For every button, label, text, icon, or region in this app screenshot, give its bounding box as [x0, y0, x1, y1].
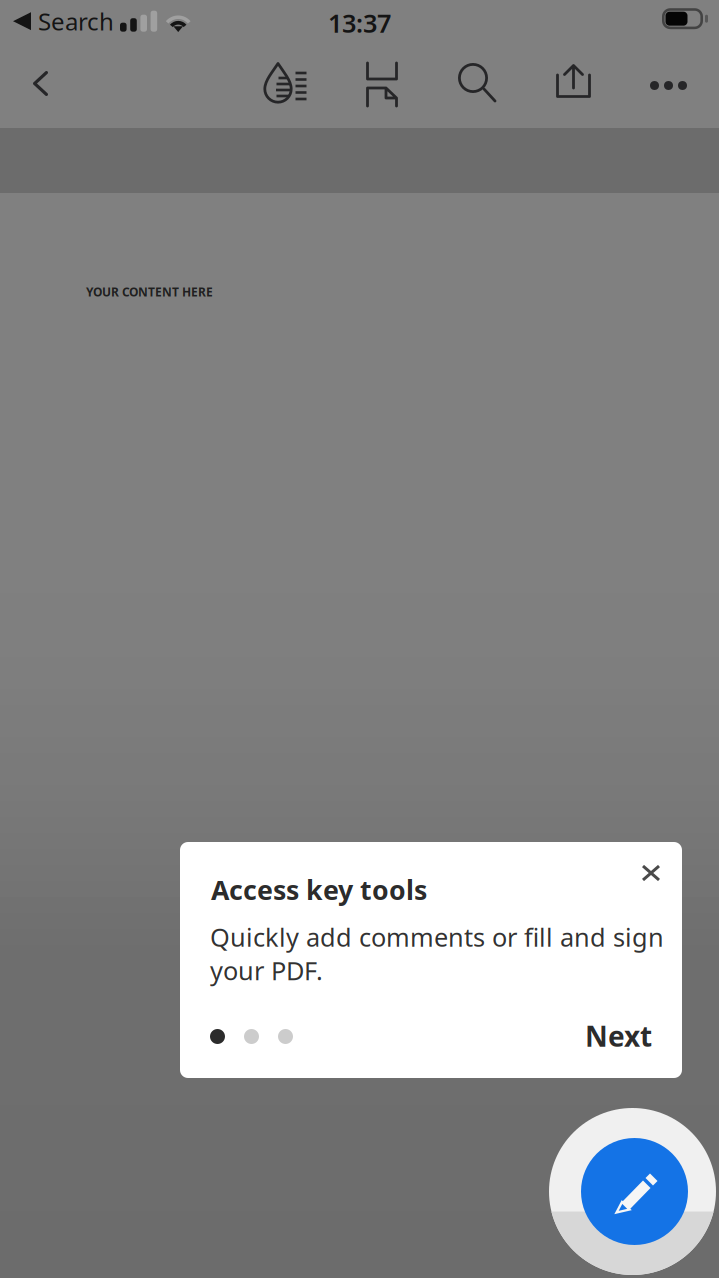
staticText: YOUR CONTENT HERE	[86, 284, 213, 300]
button[interactable]: Page layout	[348, 48, 416, 120]
button[interactable]: Share	[539, 45, 607, 117]
staticText: 13:37	[328, 6, 391, 40]
button[interactable]: Edit PDF	[581, 1138, 688, 1245]
button[interactable]: Close	[620, 845, 682, 901]
button[interactable]: Liquid mode	[251, 48, 319, 120]
staticText: Next	[585, 1017, 652, 1055]
button[interactable]: More options	[634, 49, 702, 121]
button[interactable]: Back	[6, 47, 74, 119]
staticText: Search	[38, 5, 114, 37]
button[interactable]: Search	[445, 48, 513, 120]
button[interactable]: Next	[560, 1012, 652, 1060]
staticText: Access key tools	[211, 872, 427, 907]
staticText: Quickly add comments or fill and sign yo…	[210, 920, 664, 987]
